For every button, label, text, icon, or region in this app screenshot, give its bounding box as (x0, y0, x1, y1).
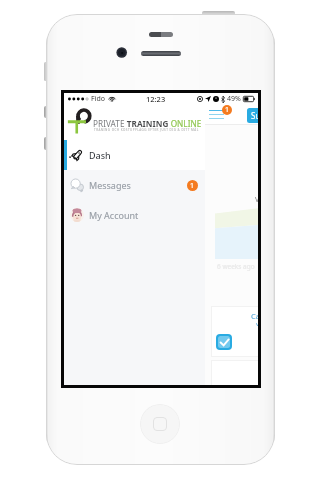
button[interactable]: Messages (64, 170, 205, 200)
button[interactable]: My Account (64, 200, 205, 230)
staticText: 1 (225, 105, 230, 115)
button[interactable]: Dash (64, 140, 205, 170)
staticText: Messages (89, 179, 131, 191)
staticText: Fido (91, 94, 105, 104)
staticText: 49% (227, 94, 241, 104)
staticText: Su (251, 110, 258, 121)
button[interactable]: Su (247, 108, 258, 123)
staticText: v (256, 320, 258, 328)
staticText: TRÄNING OCH KOSTUPPLÄGG EFTER JUST DIG &… (94, 128, 199, 132)
staticText: My Account (89, 209, 139, 221)
staticText: V (255, 195, 258, 205)
staticText: Ca (251, 311, 258, 321)
staticText: 6 weeks ago (217, 262, 255, 271)
staticText: 1 (190, 181, 195, 191)
staticText: PRIVATE TRAINING ONLINE (93, 118, 202, 129)
staticText: Dash (89, 149, 111, 161)
button[interactable]: Ca (211, 306, 258, 357)
button[interactable]: Open navigation menu (209, 109, 224, 120)
other: Task completed (218, 336, 230, 348)
staticText: 12:23 (146, 94, 166, 104)
